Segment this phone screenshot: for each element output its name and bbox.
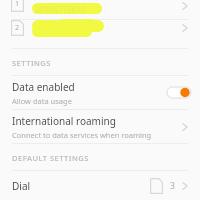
button[interactable]: Dial	[0, 171, 200, 200]
staticText: 2	[15, 23, 20, 33]
button[interactable]: 1	[0, 0, 200, 19]
staticText: 08976772610	[35, 4, 86, 15]
button[interactable]: International roaming	[0, 110, 200, 143]
staticText: Dial	[12, 179, 150, 193]
staticText: SETTINGS	[12, 58, 51, 68]
staticText: DEFAULT SETTINGS	[12, 153, 89, 163]
staticText: Allow data usage	[12, 96, 72, 106]
button[interactable]: Data enabled	[0, 76, 200, 109]
staticText: 1	[15, 0, 20, 9]
staticText: Connect to data services when roaming	[12, 130, 152, 140]
staticText: Data enabled	[12, 80, 75, 94]
button[interactable]: 2	[0, 20, 200, 48]
button[interactable]: Data enabled toggle	[167, 87, 191, 98]
staticText: 3	[170, 180, 175, 192]
staticText: International roaming	[12, 114, 116, 128]
